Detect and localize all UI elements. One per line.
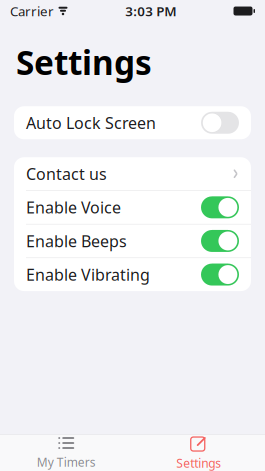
staticText: Contact us [26,163,107,184]
button[interactable]: Auto Lock Screen [14,106,251,139]
staticText: Settings [16,40,152,84]
staticText: Auto Lock Screen [26,112,156,133]
button[interactable]: Enable Beeps [14,224,251,257]
button[interactable]: My Timers [0,430,132,471]
staticText: 3:03 PM [125,2,176,20]
staticText: Settings [176,455,221,471]
staticText: Enable Beeps [26,230,127,251]
button[interactable]: Enable Vibrating [14,258,251,291]
button[interactable]: Contact us [14,157,251,190]
staticText: Enable Vibrating [26,264,150,285]
staticText: Carrier [10,2,54,20]
button[interactable]: Settings [132,429,265,471]
staticText: My Timers [37,454,96,470]
button[interactable]: Enable Voice [14,191,251,224]
staticText: Enable Voice [26,197,121,218]
